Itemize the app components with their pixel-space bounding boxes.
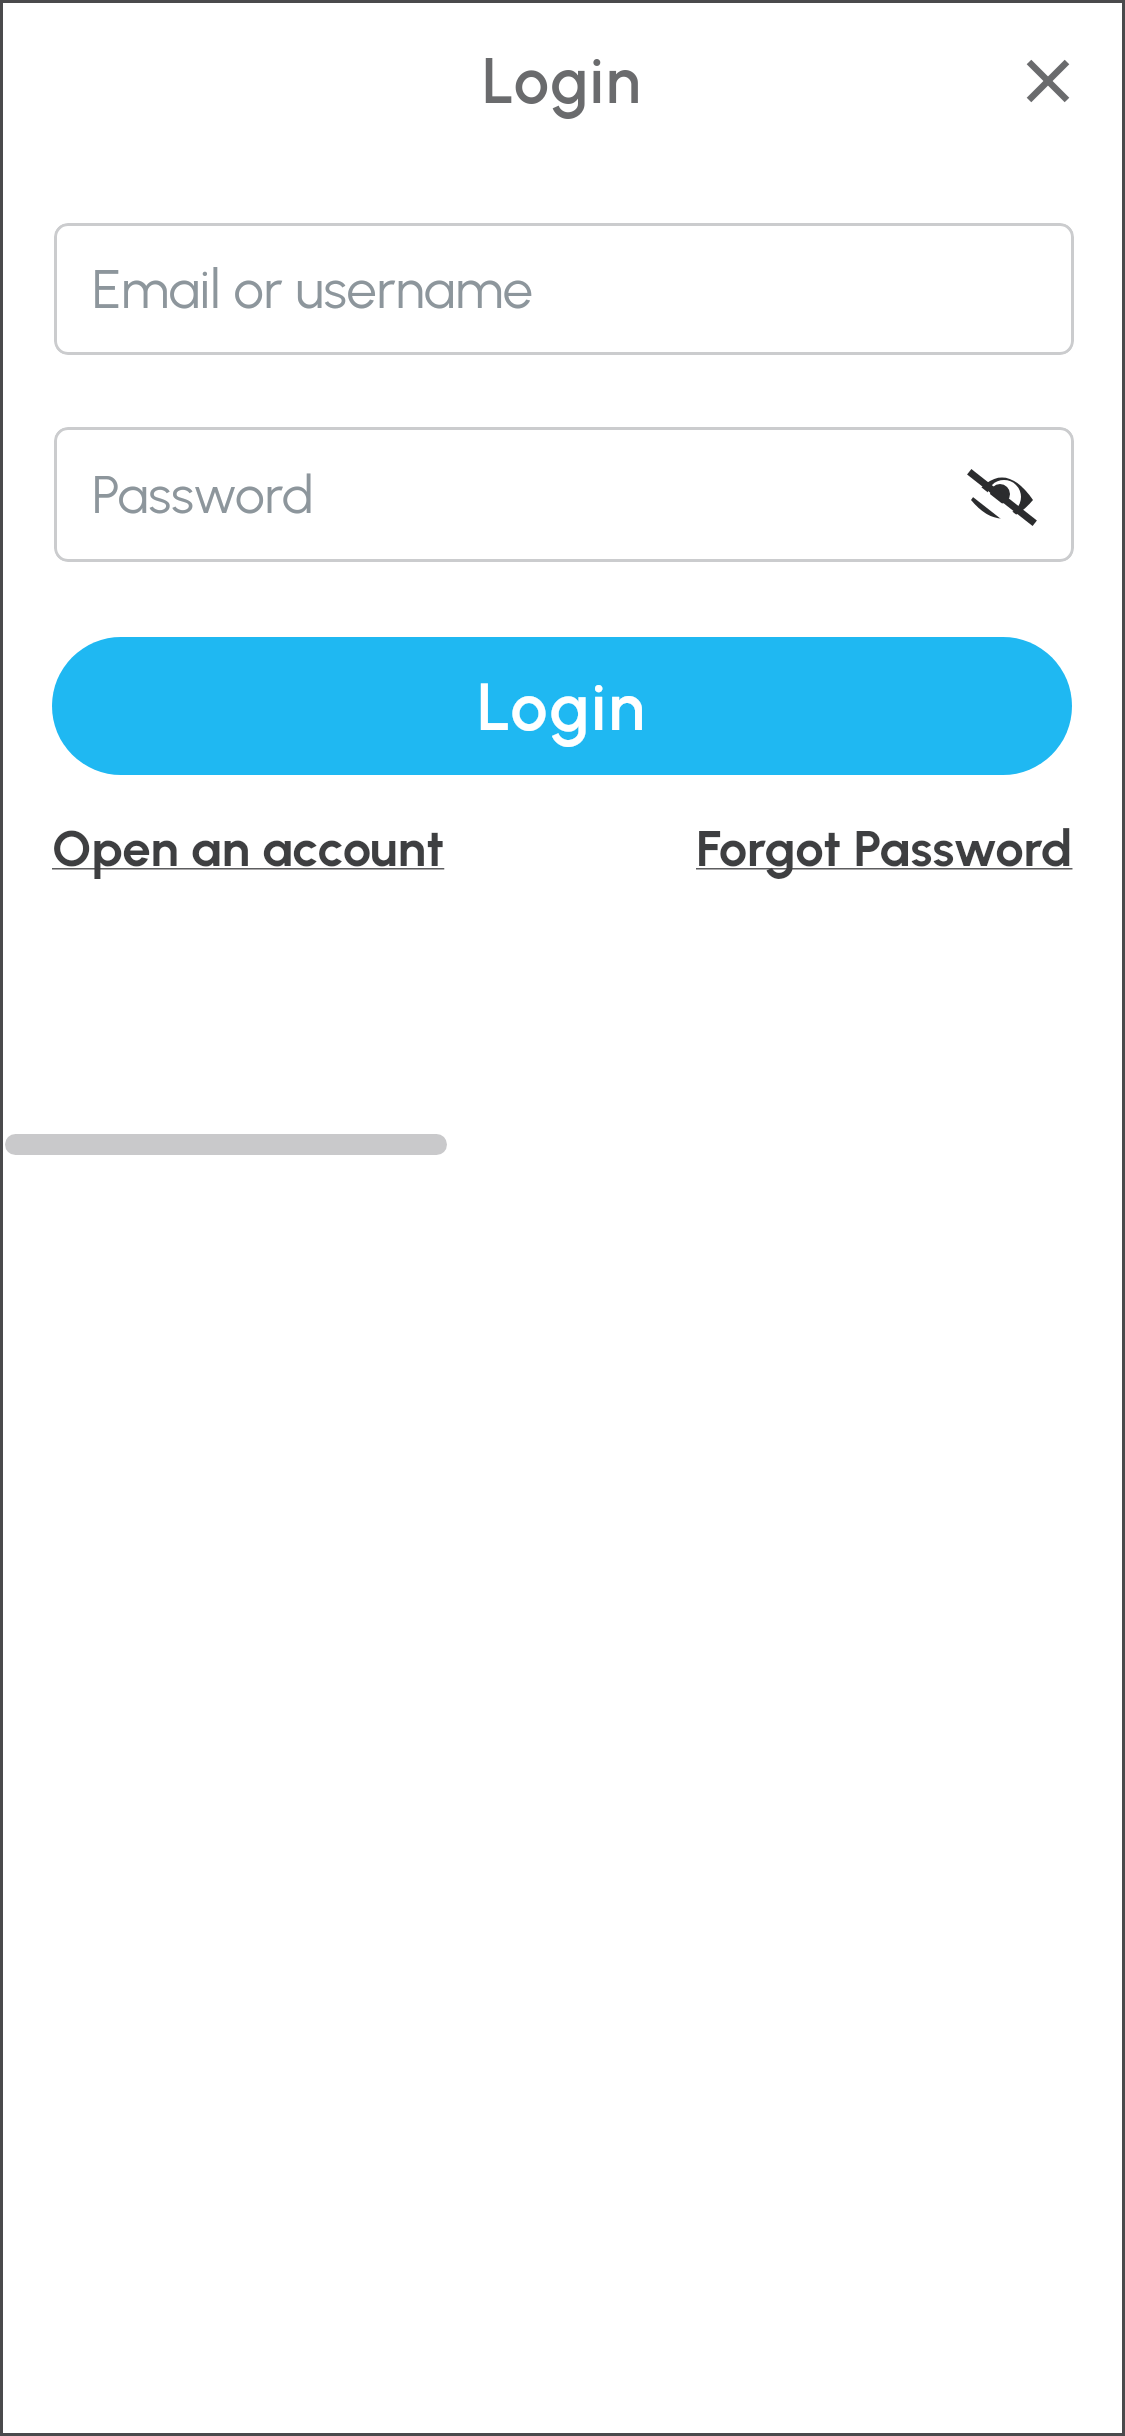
button[interactable]: Email or username [54,223,1074,355]
button[interactable]: Password [54,427,1074,562]
staticText: Login [482,43,643,119]
staticText: Password [92,463,314,527]
staticText: Forgot Password [696,818,1073,879]
staticText: Open an account [52,818,445,879]
button[interactable]: Login [52,637,1072,775]
button[interactable] [966,462,1038,534]
staticText: Login [477,667,648,746]
staticText: Email or username [92,257,533,322]
button[interactable]: Open an account [52,818,445,879]
button[interactable] [1004,37,1092,125]
button[interactable]: Forgot Password [696,818,1073,879]
